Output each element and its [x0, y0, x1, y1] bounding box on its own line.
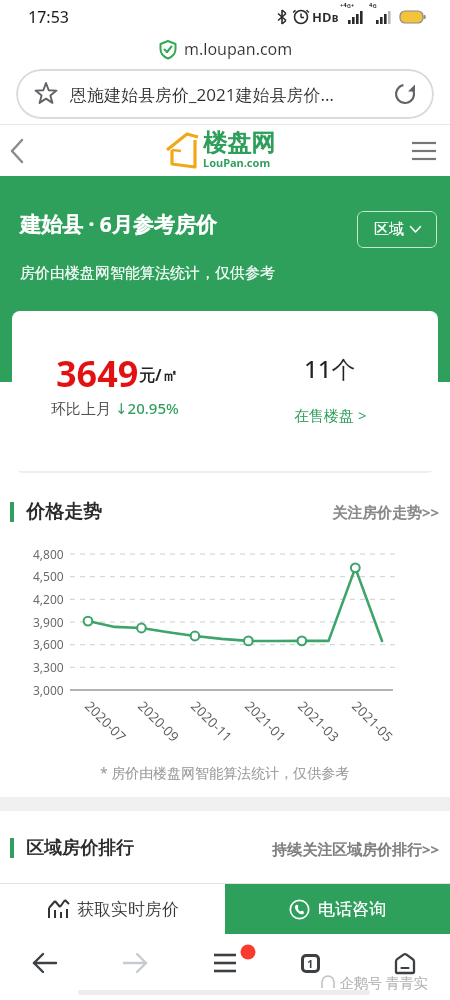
staticText: 1: [307, 956, 314, 971]
staticText: 3649: [56, 349, 139, 390]
staticText: 建始县 · 6月参考房价: [20, 210, 217, 239]
staticText: 4,500: [33, 568, 64, 584]
staticText: LouPan.com: [203, 155, 271, 169]
staticText: ⁺⁴ᴳ⁺: [340, 1, 355, 13]
staticText: 持续关注区域房价排行>>: [272, 839, 440, 859]
staticText: 房价由楼盘网智能算法统计，仅供参考: [20, 264, 275, 283]
staticText: ↓20.95%: [115, 398, 179, 418]
staticText: 2020-09: [134, 697, 183, 746]
button[interactable]: [393, 952, 417, 975]
button[interactable]: [212, 951, 238, 975]
button[interactable]: 电话咨询: [225, 884, 450, 934]
staticText: 获取实时房价: [77, 899, 179, 920]
staticText: 3,900: [33, 614, 64, 630]
staticText: 3,300: [33, 659, 64, 675]
staticText: 价格走势: [26, 500, 102, 524]
button[interactable]: [12, 311, 438, 471]
button[interactable]: 获取实时房价: [0, 884, 225, 934]
staticText: 2020-07: [81, 697, 130, 746]
staticText: 企鹅号 青青实: [340, 973, 428, 991]
staticText: 元/㎡: [139, 364, 178, 386]
button[interactable]: 1: [301, 954, 320, 973]
staticText: 楼盘网: [203, 128, 275, 156]
button[interactable]: 在售楼盘 >: [270, 402, 390, 428]
staticText: 11个: [304, 352, 356, 385]
staticText: 2021-05: [348, 697, 397, 746]
staticText: 电话咨询: [318, 899, 386, 920]
button[interactable]: [410, 140, 438, 162]
button[interactable]: [16, 69, 434, 119]
staticText: HDʙ: [312, 8, 339, 26]
staticText: m.loupan.com: [184, 38, 293, 60]
button[interactable]: [8, 138, 28, 164]
staticText: * 房价由楼盘网智能算法统计，仅供参考: [100, 763, 350, 782]
staticText: 区域: [374, 220, 404, 239]
staticText: 环比上月: [51, 398, 115, 418]
staticText: 17:53: [28, 6, 69, 28]
button[interactable]: 区域: [357, 211, 437, 248]
staticText: 2021-03: [294, 697, 343, 746]
button[interactable]: [32, 951, 58, 975]
staticText: 2021-01: [241, 697, 290, 746]
staticText: 恩施建始县房价_2021建始县房价…: [70, 83, 334, 106]
staticText: 区域房价排行: [26, 837, 134, 860]
staticText: 在售楼盘 >: [294, 405, 367, 425]
staticText: 关注房价走势>>: [332, 502, 440, 522]
staticText: 4,800: [33, 546, 64, 562]
staticText: 3,600: [33, 636, 64, 652]
staticText: ⁴ᴳ: [369, 1, 377, 13]
staticText: 4,200: [33, 591, 64, 607]
staticText: 3,000: [33, 682, 64, 698]
button[interactable]: [122, 951, 148, 975]
staticText: 2020-11: [187, 697, 236, 746]
